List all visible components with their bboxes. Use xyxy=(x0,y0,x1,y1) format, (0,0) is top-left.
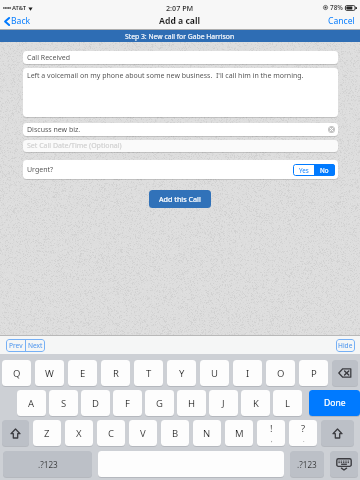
button[interactable]: A xyxy=(17,390,46,416)
staticText: ? xyxy=(301,422,306,435)
staticText: AT&T xyxy=(12,4,27,12)
button[interactable]: Clear text xyxy=(328,126,338,133)
button[interactable]: B xyxy=(161,420,189,446)
staticText: Add a call xyxy=(159,15,201,27)
button[interactable]: .?123 xyxy=(290,451,324,477)
staticText: Prev xyxy=(9,341,23,350)
staticText: Cancel xyxy=(328,15,355,27)
button[interactable]: L xyxy=(273,390,302,416)
staticText: O xyxy=(277,367,285,380)
button[interactable]: P xyxy=(299,360,328,386)
button[interactable]: Done xyxy=(309,390,360,416)
staticText: Discuss new biz. xyxy=(27,125,81,135)
staticText: W xyxy=(45,367,54,380)
button[interactable]: W xyxy=(35,360,64,386)
staticText: Z xyxy=(44,427,50,440)
staticText: Q xyxy=(13,367,21,380)
button[interactable]: J xyxy=(209,390,238,416)
button[interactable]: Yes xyxy=(293,164,314,176)
button[interactable]: Backspace xyxy=(332,360,358,386)
button[interactable]: .?123 xyxy=(3,451,92,477)
staticText: L xyxy=(285,397,290,410)
button[interactable]: S xyxy=(49,390,78,416)
staticText: 78% xyxy=(330,3,343,12)
button[interactable]: Shift xyxy=(321,420,354,446)
button[interactable]: T xyxy=(134,360,163,386)
staticText: S xyxy=(61,397,67,410)
button[interactable]: N xyxy=(193,420,221,446)
button[interactable]: M xyxy=(225,420,253,446)
staticText: Set Call Date/Time (Optional) xyxy=(27,141,122,151)
button[interactable]: R xyxy=(101,360,130,386)
staticText: Next xyxy=(28,341,43,350)
button[interactable]: Left a voicemail on my phone about some … xyxy=(23,68,338,117)
button[interactable]: V xyxy=(129,420,157,446)
button[interactable]: Cancel xyxy=(324,15,360,27)
staticText: N xyxy=(203,427,211,440)
button[interactable]: Next xyxy=(26,339,45,352)
button[interactable]: Set Call Date/Time (Optional) xyxy=(23,140,338,152)
button[interactable]: O xyxy=(266,360,295,386)
button[interactable]: Q xyxy=(2,360,31,386)
staticText: Yes xyxy=(299,166,309,175)
staticText: . xyxy=(303,436,305,444)
button[interactable]: Hide xyxy=(336,339,355,352)
staticText: No xyxy=(320,166,329,175)
staticText: I xyxy=(246,367,250,380)
staticText: Step 3: New call for Gabe Harrison xyxy=(125,32,235,41)
button[interactable]: Back xyxy=(0,15,35,27)
staticText: Back xyxy=(11,15,31,27)
staticText: T xyxy=(146,367,152,380)
staticText: H xyxy=(188,397,196,410)
staticText: A xyxy=(28,397,35,410)
staticText: , xyxy=(271,436,273,444)
button[interactable]: C xyxy=(97,420,125,446)
staticText: Call Received xyxy=(27,53,71,63)
staticText: C xyxy=(108,427,115,440)
staticText: E xyxy=(80,367,86,380)
button[interactable]: No xyxy=(314,164,335,176)
button[interactable]: X xyxy=(65,420,93,446)
staticText: 2:07 PM xyxy=(166,3,194,13)
staticText: G xyxy=(156,397,163,410)
button[interactable]: Hide keyboard xyxy=(330,451,358,477)
staticText: D xyxy=(92,397,99,410)
button[interactable]: U xyxy=(200,360,229,386)
staticText: Done xyxy=(324,397,346,409)
button[interactable]: Z xyxy=(33,420,61,446)
button[interactable]: Y xyxy=(167,360,196,386)
button[interactable]: Discuss new biz. xyxy=(23,123,338,136)
button[interactable]: Urgent? xyxy=(23,160,338,179)
staticText: B xyxy=(172,427,179,440)
staticText: P xyxy=(311,367,317,380)
button[interactable]: ? xyxy=(289,420,317,446)
button[interactable]: D xyxy=(81,390,110,416)
button[interactable]: K xyxy=(241,390,270,416)
staticText: .?123 xyxy=(38,459,58,470)
staticText: X xyxy=(76,427,82,440)
button[interactable]: Add this Call xyxy=(149,190,211,208)
button[interactable]: Call Received xyxy=(23,51,338,64)
staticText: V xyxy=(140,427,146,440)
button[interactable]: H xyxy=(177,390,206,416)
button[interactable]: I xyxy=(233,360,262,386)
staticText: Urgent? xyxy=(27,165,54,175)
button[interactable]: Shift xyxy=(2,420,29,446)
button[interactable]: E xyxy=(68,360,97,386)
button[interactable]: ! xyxy=(257,420,285,446)
staticText: K xyxy=(253,397,259,410)
staticText: Left a voicemail on my phone about some … xyxy=(27,71,304,81)
staticText: M xyxy=(235,427,244,440)
staticText: R xyxy=(113,367,119,380)
staticText: U xyxy=(211,367,218,380)
button[interactable]: Prev xyxy=(6,339,25,352)
staticText: Y xyxy=(179,367,185,380)
staticText: Add this Call xyxy=(159,194,201,204)
staticText: J xyxy=(222,397,225,410)
staticText: .?123 xyxy=(297,459,317,470)
button[interactable]: G xyxy=(145,390,174,416)
staticText: Hide xyxy=(338,341,353,350)
button[interactable]: F xyxy=(113,390,142,416)
staticText: F xyxy=(125,397,130,410)
